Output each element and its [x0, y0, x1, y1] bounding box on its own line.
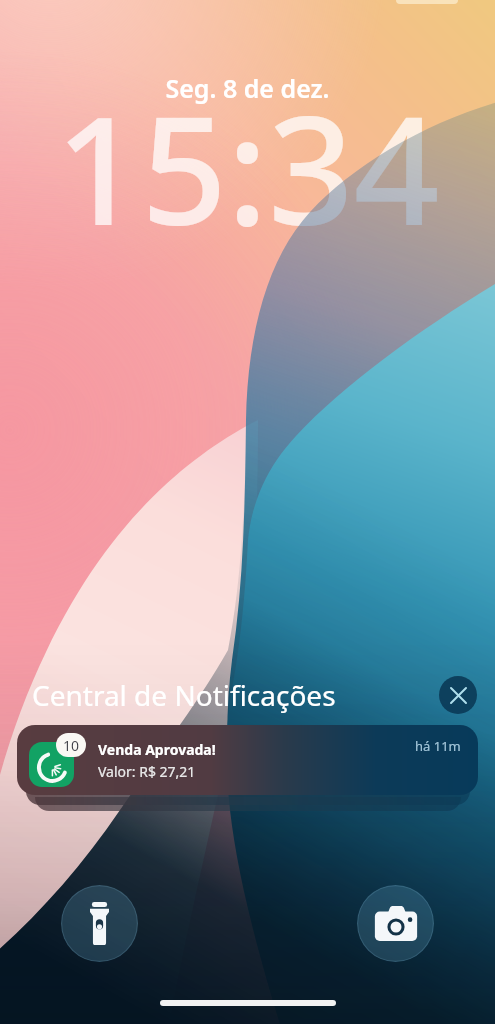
button[interactable]: Lanterna [61, 885, 138, 962]
staticText: Valor: R$ 27,21 [98, 762, 196, 781]
button[interactable]: Fechar [439, 676, 477, 714]
staticText: há 11m [415, 737, 461, 755]
staticText: Seg. 8 de dez. [165, 71, 330, 105]
staticText: 15:34 [55, 65, 440, 235]
staticText: 10 [63, 736, 80, 755]
button[interactable]: 10 [17, 725, 478, 795]
staticText: Central de Notificações [32, 676, 336, 714]
staticText: Venda Aprovada! [98, 740, 216, 759]
button[interactable]: Câmera [357, 885, 434, 962]
